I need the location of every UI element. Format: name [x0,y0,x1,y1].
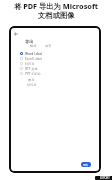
staticText: PPT 幻灯片 [25,72,42,76]
button[interactable]: 语言 [45,44,52,48]
button[interactable]: RTF 文本 [20,66,56,71]
staticText: 文档或图像 [38,11,75,20]
staticText: Word (.doc) [25,52,43,56]
button[interactable]: Excel (.xlsx) [20,56,56,61]
button[interactable]: Word (.doc) [20,51,56,56]
staticText: RTF 文本 [25,67,38,71]
staticText: 将 PDF 导出为 Microsoft [14,1,99,11]
staticText: 幻灯片 [27,83,37,87]
staticText: 导出 [83,163,89,166]
staticText: 图片 [28,78,35,82]
staticText: 幻灯片 [25,62,35,66]
button[interactable]: 导出 [81,162,91,167]
button[interactable]: Back [12,30,19,37]
button[interactable]: PPT 幻灯片 [20,71,56,76]
staticText: 导出 [25,39,34,44]
button[interactable]: 格式 [30,44,37,48]
staticText: EXPORT [100,176,110,180]
button[interactable]: 幻灯片 [20,61,56,66]
staticText: Excel (.xlsx) [25,57,42,61]
